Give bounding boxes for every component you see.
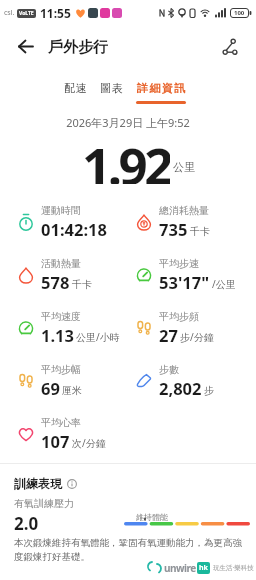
staticText: 69 [41, 377, 60, 399]
button[interactable] [67, 479, 77, 489]
staticText: 平均步幅 [41, 363, 81, 376]
staticText: 27 [159, 324, 178, 346]
staticText: 本次鍛煉維持有氧體能，鞏固有氧運動能力，為更高強度鍛煉打好基礎。 [14, 537, 244, 563]
staticText: unwire [164, 561, 196, 575]
staticText: VoLTE [19, 10, 34, 17]
staticText: 厘米 [62, 384, 82, 397]
staticText: 圖表 [100, 81, 124, 95]
staticText: csl. [4, 8, 15, 18]
staticText: 訓練表現 [14, 476, 62, 491]
staticText: 1.92 [82, 130, 170, 184]
staticText: 2026年3月29日 上午9:52 [0, 115, 256, 130]
staticText: 1.13 [41, 324, 74, 346]
staticText: 活動熱量 [41, 257, 81, 270]
staticText: hk [199, 563, 208, 573]
button[interactable]: 詳細資訊 [136, 81, 186, 104]
staticText: 步數 [159, 363, 179, 376]
staticText: 玩生活·樂科技 [213, 563, 254, 572]
staticText: 次/分鐘 [72, 436, 106, 450]
button[interactable]: 平均速度 [16, 310, 128, 346]
staticText: 01:42:18 [41, 218, 107, 240]
staticText: 578 [41, 271, 70, 293]
button[interactable] [12, 33, 40, 61]
button[interactable]: 總消耗熱量 [134, 204, 256, 240]
staticText: 步/分鐘 [180, 330, 214, 344]
staticText: 千卡 [190, 225, 210, 238]
staticText: 53'17" [159, 271, 210, 293]
staticText: 平均步頻 [159, 310, 199, 323]
staticText: /公里 [212, 277, 236, 291]
staticText: 總消耗熱量 [159, 204, 209, 217]
button[interactable]: 平均步速 [134, 257, 256, 293]
button[interactable]: 步數 [134, 363, 256, 399]
staticText: 2.0 [14, 512, 39, 535]
button[interactable]: 運動時間 [16, 204, 128, 240]
button[interactable]: 活動熱量 [16, 257, 128, 293]
staticText: 11:55 [40, 5, 71, 21]
staticText: 平均速度 [41, 310, 81, 323]
button[interactable]: 平均心率 [16, 416, 128, 452]
staticText: 維持體能 [136, 512, 168, 522]
staticText: 步 [204, 384, 214, 397]
staticText: 配速 [64, 81, 88, 95]
button[interactable]: 配速 [64, 81, 88, 104]
staticText: 平均步速 [159, 257, 199, 270]
staticText: 107 [41, 430, 70, 452]
staticText: 千卡 [72, 278, 92, 291]
button[interactable]: 平均步幅 [16, 363, 128, 399]
button[interactable]: 平均步頻 [134, 310, 256, 346]
button[interactable] [216, 33, 244, 61]
button[interactable]: 圖表 [100, 81, 124, 104]
staticText: 735 [159, 218, 188, 240]
staticText: 運動時間 [41, 204, 81, 217]
staticText: 平均心率 [41, 416, 81, 429]
staticText: 2,802 [159, 377, 202, 399]
staticText: 公里 [173, 160, 195, 174]
staticText: 戶外步行 [48, 38, 108, 57]
staticText: 詳細資訊 [136, 81, 186, 95]
staticText: 100 [234, 9, 245, 17]
staticText: 公里/小時 [76, 330, 120, 344]
staticText: 有氧訓練壓力 [14, 497, 74, 510]
